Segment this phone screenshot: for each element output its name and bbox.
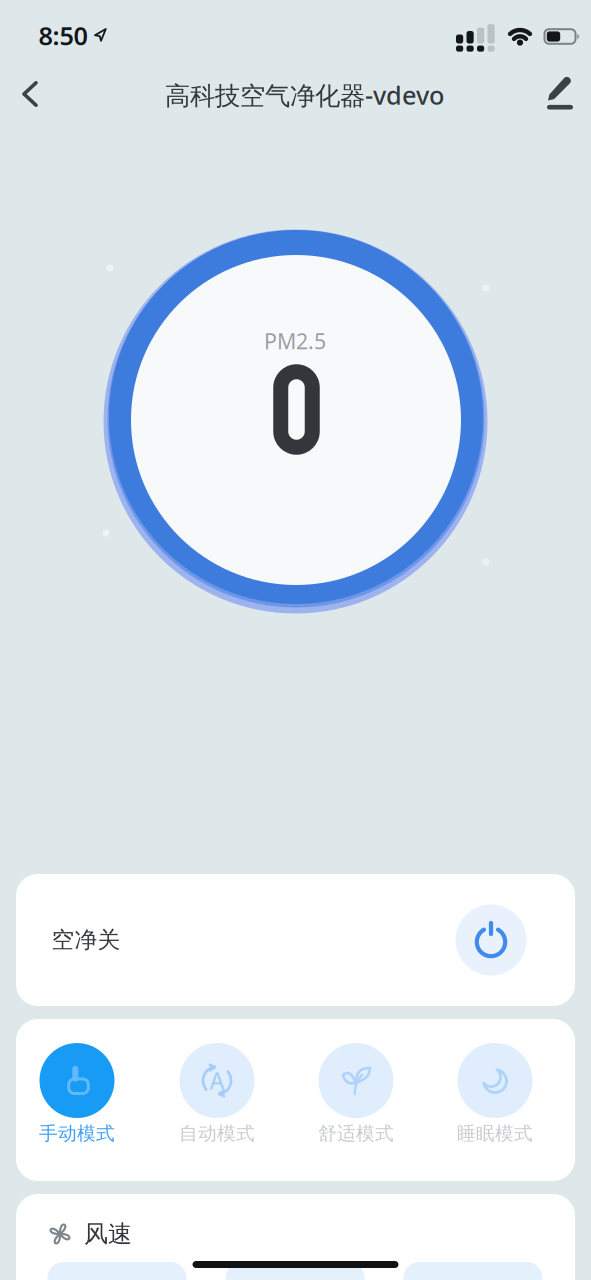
button[interactable]: Fan speed high (403, 1262, 542, 1280)
button[interactable]: 手动模式 (39, 1043, 115, 1145)
staticText: PM2.5 (264, 327, 326, 355)
button[interactable]: 舒适模式 (318, 1043, 394, 1145)
button[interactable]: A (179, 1043, 255, 1145)
button[interactable]: Edit (538, 72, 582, 116)
button[interactable]: Fan speed low (47, 1262, 186, 1280)
staticText: 8:50 (38, 19, 87, 52)
staticText: A (209, 1065, 224, 1096)
staticText: 舒适模式 (318, 1122, 394, 1145)
staticText: 自动模式 (179, 1122, 255, 1145)
button[interactable]: 睡眠模式 (457, 1043, 533, 1145)
staticText: 高科技空气净化器-vdevo (165, 78, 444, 112)
staticText: 睡眠模式 (457, 1122, 533, 1145)
button[interactable]: Back (10, 72, 50, 116)
staticText: 风速 (84, 1219, 132, 1249)
button[interactable]: Power (455, 904, 526, 975)
staticText: 手动模式 (39, 1122, 115, 1145)
button[interactable]: Fan speed medium (225, 1262, 364, 1280)
staticText: 空净关 (51, 926, 120, 954)
